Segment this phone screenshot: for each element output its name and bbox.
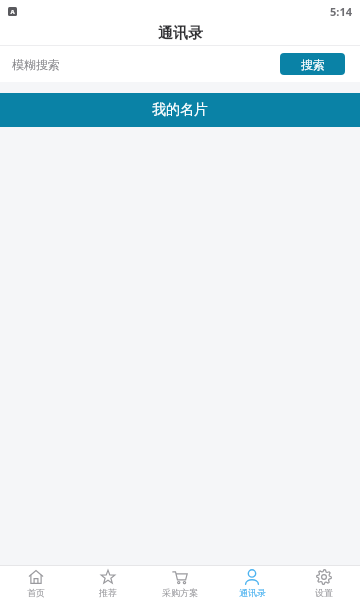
staticText: 搜索 [301,57,325,72]
button[interactable]: 设置 [288,569,360,598]
staticText: 设置 [315,587,333,598]
button[interactable]: 推荐 [72,569,144,598]
staticText: 模糊搜索 [12,57,60,72]
staticText: 通讯录 [239,587,266,598]
staticText: 5:14 [330,4,352,19]
staticText: 推荐 [99,587,117,598]
staticText: 采购方案 [162,587,198,598]
button[interactable]: 采购方案 [144,569,216,598]
staticText: 我的名片 [152,101,208,119]
staticText: 首页 [27,587,45,598]
staticText: 通讯录 [158,24,203,43]
button[interactable]: 首页 [0,569,72,598]
button[interactable]: 我的名片 [0,93,360,127]
button[interactable]: 搜索 [280,53,345,75]
staticText: A [10,8,15,16]
button[interactable]: 通讯录 [216,569,288,598]
